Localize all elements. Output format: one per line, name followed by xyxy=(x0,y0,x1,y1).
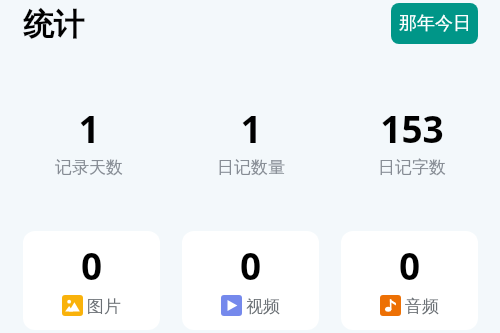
button[interactable]: 153 xyxy=(331,103,492,178)
staticText: 统计 xyxy=(23,6,84,44)
staticText: 图片 xyxy=(87,296,121,317)
staticText: 1 xyxy=(78,103,100,153)
staticText: 0 xyxy=(399,240,421,290)
button[interactable]: 0 xyxy=(182,231,319,330)
staticText: 那年今日 xyxy=(399,12,471,35)
button[interactable]: 0 xyxy=(341,231,478,330)
staticText: 1 xyxy=(240,103,262,153)
button[interactable]: 1 xyxy=(170,103,331,178)
staticText: 音频 xyxy=(405,296,439,317)
button[interactable]: 1 xyxy=(8,103,170,178)
staticText: 日记数量 xyxy=(217,157,285,178)
button[interactable]: 0 xyxy=(23,231,160,330)
staticText: 日记字数 xyxy=(378,157,446,178)
other: 图片 xyxy=(62,295,83,316)
staticText: 0 xyxy=(81,240,103,290)
other: 视频 xyxy=(221,295,242,316)
other: 音频 xyxy=(380,295,401,316)
staticText: 记录天数 xyxy=(55,157,123,178)
button[interactable]: 那年今日 xyxy=(391,3,478,44)
staticText: 153 xyxy=(380,103,444,153)
staticText: 0 xyxy=(240,240,262,290)
staticText: 视频 xyxy=(246,296,280,317)
